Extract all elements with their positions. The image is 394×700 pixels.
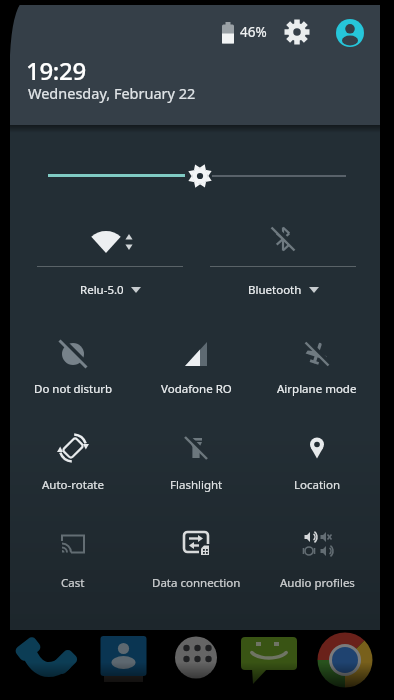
staticText: Airplane mode <box>277 381 357 397</box>
staticText: Vodafone RO <box>161 381 232 397</box>
staticText: Do not disturb <box>34 381 113 397</box>
button[interactable] <box>173 635 219 681</box>
button[interactable] <box>210 218 356 304</box>
button[interactable]: Vodafone RO <box>134 328 258 400</box>
staticText: Location <box>294 477 341 493</box>
staticText: 19:29 <box>26 54 86 87</box>
button[interactable]: Cast <box>11 518 135 590</box>
button[interactable] <box>316 632 374 690</box>
staticText: Audio profiles <box>280 575 355 591</box>
button[interactable]: Do not disturb <box>11 328 135 400</box>
button[interactable]: Data connection <box>134 518 258 590</box>
staticText: Bluetooth <box>248 282 302 298</box>
button[interactable]: Flashlight <box>134 422 258 494</box>
staticText: Cast <box>61 575 85 591</box>
button[interactable]: Airplane mode <box>255 328 379 400</box>
button[interactable] <box>283 18 311 46</box>
staticText: Auto-rotate <box>42 477 104 493</box>
button[interactable]: Audio profiles <box>255 518 379 590</box>
button[interactable] <box>98 634 150 686</box>
staticText: 46% <box>240 23 267 41</box>
staticText: Data connection <box>152 575 241 591</box>
button[interactable]: Relu-5.0 <box>40 282 180 298</box>
button[interactable]: Bluetooth <box>213 282 353 298</box>
button[interactable]: Auto-rotate <box>11 422 135 494</box>
staticText: Wednesday, February 22 <box>28 83 196 103</box>
button[interactable] <box>14 636 76 698</box>
staticText: Flashlight <box>170 477 223 493</box>
button[interactable] <box>336 19 364 47</box>
staticText: Relu-5.0 <box>80 282 124 298</box>
button[interactable] <box>239 635 299 695</box>
button[interactable] <box>37 218 183 304</box>
button[interactable] <box>187 163 213 189</box>
button[interactable]: Location <box>255 422 379 494</box>
